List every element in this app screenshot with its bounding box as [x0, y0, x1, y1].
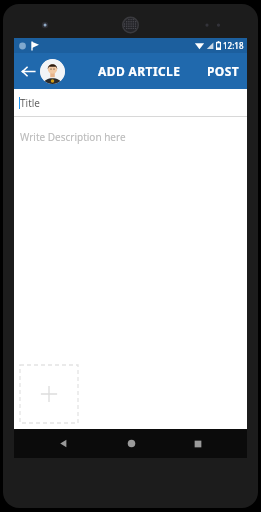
button[interactable]: Title [14, 89, 247, 116]
button[interactable]: Write Description here [14, 117, 247, 429]
staticText: 12:18 [223, 40, 244, 51]
button[interactable]: Back [16, 59, 40, 83]
staticText: Write Description here [20, 130, 126, 144]
button[interactable]: Recent apps [179, 429, 217, 458]
staticText: Title [20, 96, 40, 110]
button[interactable]: Back [44, 429, 82, 458]
button[interactable]: Add image [20, 365, 78, 423]
button[interactable]: Home [112, 429, 150, 458]
button[interactable]: POST [200, 53, 247, 89]
staticText: ADD ARTICLE [98, 63, 181, 79]
staticText: POST [207, 63, 240, 79]
button[interactable]: Profile [40, 59, 65, 84]
